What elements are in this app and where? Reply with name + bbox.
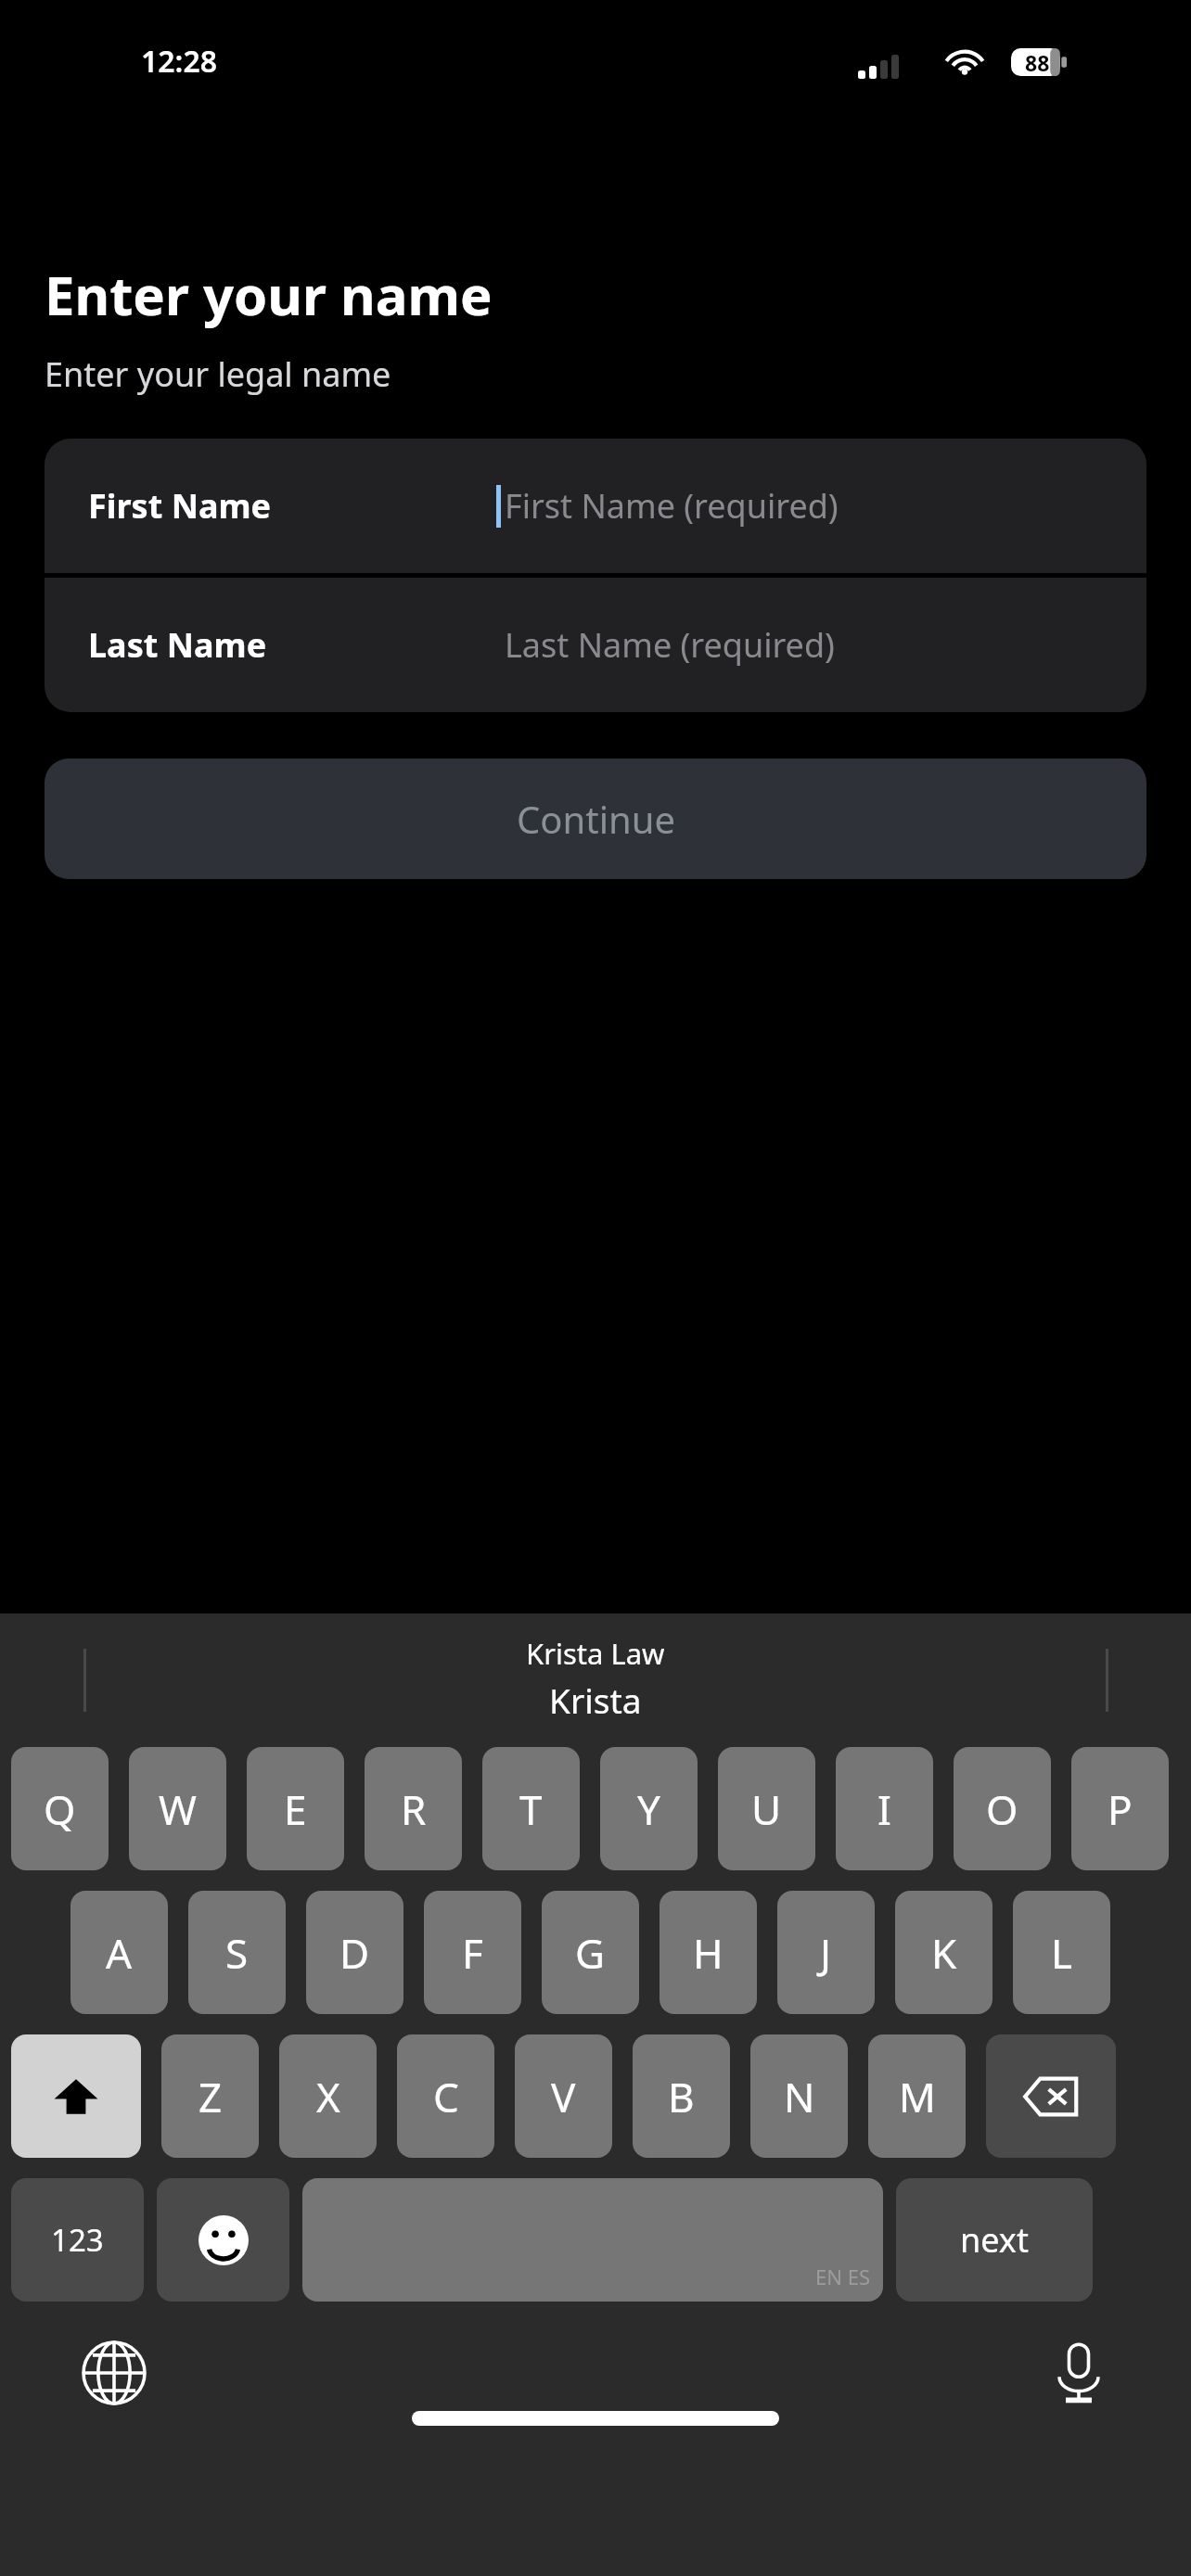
staticText: Continue [517, 794, 675, 844]
staticText: J [820, 1925, 832, 1981]
staticText: Q [44, 1781, 76, 1837]
button[interactable]: C [397, 2034, 494, 2158]
button[interactable]: R [365, 1747, 462, 1870]
staticText: W [159, 1781, 197, 1837]
staticText: Y [637, 1781, 660, 1837]
staticText: C [433, 2069, 459, 2124]
staticText: T [519, 1781, 543, 1837]
staticText: 123 [51, 2219, 104, 2261]
staticText: V [551, 2069, 576, 2124]
staticText: X [316, 2069, 340, 2124]
button[interactable]: N [750, 2034, 848, 2158]
button[interactable]: Continue [45, 759, 1146, 879]
staticText: H [693, 1925, 724, 1981]
button[interactable]: L [1013, 1891, 1110, 2014]
button[interactable]: F [424, 1891, 521, 2014]
staticText: P [1108, 1781, 1133, 1837]
staticText: Krista [549, 1677, 642, 1723]
staticText: S [225, 1925, 249, 1981]
staticText: Enter your name [45, 258, 493, 331]
button[interactable]: Change keyboard language [82, 2340, 147, 2405]
button[interactable]: H [660, 1891, 757, 2014]
staticText: U [751, 1781, 782, 1837]
button[interactable]: D [306, 1891, 403, 2014]
button[interactable]: Dictation [1046, 2340, 1111, 2405]
button[interactable]: Krista Law [0, 1613, 1191, 1723]
button[interactable]: K [895, 1891, 992, 2014]
button[interactable]: 123 [11, 2178, 144, 2302]
staticText: EN ES [815, 2263, 870, 2290]
staticText: First Name (required) [505, 483, 839, 529]
staticText: I [877, 1781, 891, 1837]
button[interactable]: W [129, 1747, 226, 1870]
staticText: D [339, 1925, 370, 1981]
staticText: next [960, 2217, 1029, 2263]
staticText: O [986, 1781, 1018, 1837]
button[interactable]: Q [11, 1747, 109, 1870]
button[interactable]: Backspace [986, 2034, 1116, 2158]
staticText: Enter your legal name [45, 351, 391, 397]
button[interactable]: B [633, 2034, 730, 2158]
staticText: L [1051, 1925, 1073, 1981]
staticText: N [784, 2069, 815, 2124]
staticText: Last Name [88, 622, 267, 668]
staticText: E [284, 1781, 307, 1837]
staticText: G [575, 1925, 606, 1981]
button[interactable]: M [868, 2034, 966, 2158]
button[interactable]: G [542, 1891, 639, 2014]
staticText: 12:28 [141, 41, 218, 82]
staticText: Krista Law [526, 1634, 665, 1673]
button[interactable]: Space [302, 2178, 883, 2302]
button[interactable]: V [515, 2034, 612, 2158]
button[interactable]: Shift [11, 2034, 141, 2158]
button[interactable]: I [836, 1747, 933, 1870]
staticText: R [401, 1781, 427, 1837]
staticText: K [931, 1925, 957, 1981]
staticText: A [106, 1925, 133, 1981]
button[interactable]: S [188, 1891, 286, 2014]
staticText: B [668, 2069, 695, 2124]
button[interactable]: Y [600, 1747, 698, 1870]
staticText: Last Name (required) [505, 622, 835, 668]
button[interactable]: Z [161, 2034, 259, 2158]
staticText: F [462, 1925, 483, 1981]
staticText: Z [198, 2069, 223, 2124]
button[interactable]: J [777, 1891, 875, 2014]
button[interactable]: Emoji [157, 2178, 289, 2302]
button[interactable]: P [1071, 1747, 1169, 1870]
button[interactable]: O [954, 1747, 1051, 1870]
staticText: First Name [88, 483, 272, 529]
button[interactable]: T [482, 1747, 580, 1870]
button[interactable]: next [896, 2178, 1093, 2302]
button[interactable]: U [718, 1747, 815, 1870]
button[interactable]: E [247, 1747, 344, 1870]
staticText: 88 [1025, 48, 1050, 77]
button[interactable]: First Name [45, 439, 1146, 573]
staticText: M [899, 2069, 936, 2124]
button[interactable]: X [279, 2034, 377, 2158]
button[interactable]: A [70, 1891, 168, 2014]
button[interactable]: Last Name [45, 578, 1146, 712]
